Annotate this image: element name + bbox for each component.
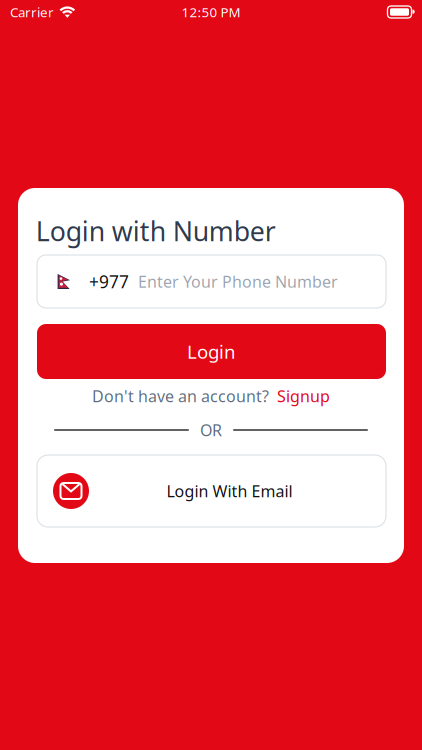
button[interactable]: Login (37, 324, 386, 379)
button[interactable]: Login With Email (37, 455, 386, 527)
button[interactable]: Signup (277, 385, 330, 407)
staticText: Login With Email (166, 480, 292, 502)
staticText: +977 (89, 270, 129, 293)
button[interactable]: +977 (37, 255, 386, 308)
staticText: Signup (277, 385, 330, 407)
staticText: Login with Number (36, 213, 276, 249)
staticText: Carrier (10, 3, 54, 21)
staticText: 12:50 PM (181, 3, 240, 21)
staticText: Enter Your Phone Number (138, 271, 338, 292)
staticText: Don't have an account? (92, 385, 269, 407)
staticText: Login (187, 339, 236, 364)
staticText: OR (200, 419, 222, 441)
